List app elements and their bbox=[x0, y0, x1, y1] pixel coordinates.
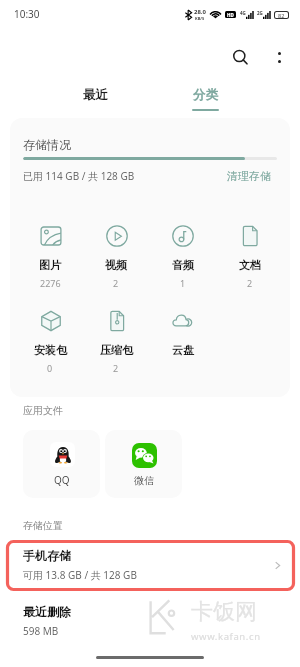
staticText: 安装包 bbox=[34, 343, 67, 357]
button[interactable]: 视频 bbox=[83, 224, 149, 289]
staticText: 最近删除 bbox=[23, 604, 71, 619]
staticText: 压缩包 bbox=[100, 343, 133, 357]
staticText: 已用 114 GB / 共 128 GB bbox=[23, 169, 135, 183]
button[interactable]: 手机存储 bbox=[0, 542, 300, 588]
staticText: 微信 bbox=[134, 474, 154, 487]
staticText: 0 bbox=[47, 362, 53, 374]
button[interactable]: 安装包 bbox=[17, 309, 83, 374]
staticText: 分类 bbox=[193, 87, 218, 103]
button[interactable]: 音频 bbox=[149, 224, 216, 289]
staticText: 文档 bbox=[239, 258, 261, 272]
staticText: 最近 bbox=[83, 87, 108, 103]
staticText: 10:30 bbox=[14, 7, 40, 21]
staticText: www.kafan.cn bbox=[191, 630, 261, 643]
staticText: KB/S bbox=[195, 16, 205, 21]
button[interactable]: 压缩包 bbox=[83, 309, 149, 374]
staticText: 清理存储 bbox=[227, 169, 271, 183]
staticText: 1 bbox=[180, 277, 186, 289]
staticText: 2 bbox=[247, 277, 253, 289]
button[interactable]: 最近 bbox=[65, 87, 125, 103]
button[interactable]: Search bbox=[224, 41, 256, 73]
staticText: 视频 bbox=[105, 258, 127, 272]
button[interactable]: 图片 bbox=[17, 224, 83, 289]
staticText: 存储情况 bbox=[23, 137, 71, 152]
button[interactable]: QQ bbox=[23, 430, 100, 498]
staticText: 2 bbox=[113, 277, 119, 289]
staticText: 云盘 bbox=[172, 343, 194, 357]
staticText: 28.0 bbox=[194, 8, 206, 16]
button[interactable]: 文档 bbox=[216, 224, 283, 289]
staticText: 应用文件 bbox=[23, 404, 63, 417]
staticText: HD bbox=[227, 12, 234, 18]
button[interactable]: 最近删除 bbox=[0, 600, 300, 642]
staticText: 598 MB bbox=[23, 624, 59, 638]
button[interactable]: 分类 bbox=[175, 87, 235, 111]
staticText: 2276 bbox=[40, 277, 61, 289]
staticText: 卡饭网 bbox=[191, 598, 257, 626]
staticText: QQ bbox=[54, 473, 70, 487]
staticText: 音频 bbox=[172, 258, 194, 272]
staticText: 82 bbox=[278, 12, 285, 18]
button[interactable]: More options bbox=[267, 45, 291, 69]
button[interactable]: 清理存储 bbox=[227, 169, 277, 183]
staticText: 图片 bbox=[39, 258, 61, 272]
staticText: 2G bbox=[257, 10, 263, 16]
staticText: 手机存储 bbox=[23, 548, 71, 563]
staticText: 存储位置 bbox=[23, 519, 63, 532]
staticText: 可用 13.8 GB / 共 128 GB bbox=[23, 568, 137, 582]
button[interactable]: 微信 bbox=[105, 430, 182, 498]
staticText: 2 bbox=[113, 362, 119, 374]
staticText: 4G bbox=[240, 10, 246, 16]
button[interactable]: 云盘 bbox=[149, 309, 216, 374]
